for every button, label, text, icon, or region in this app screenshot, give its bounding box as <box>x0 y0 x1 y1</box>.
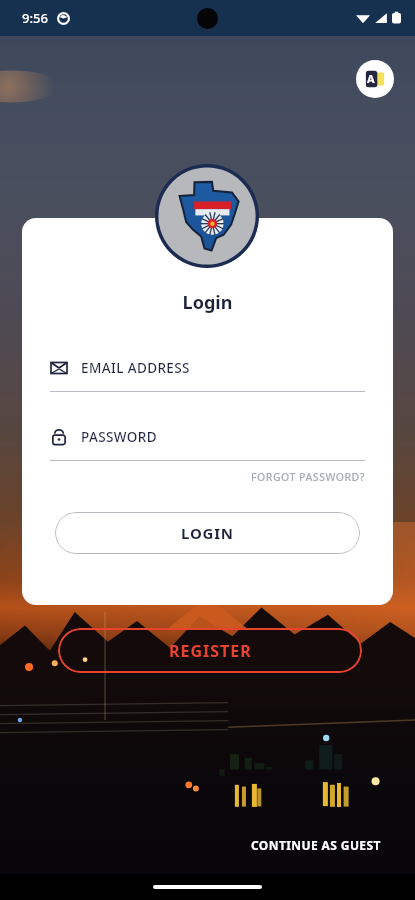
staticText: CONTINUE AS GUEST <box>251 837 381 853</box>
button[interactable]: LOGIN <box>55 512 360 554</box>
staticText: FORGOT PASSWORD? <box>251 470 365 484</box>
staticText: EMAIL ADDRESS <box>81 359 190 377</box>
button[interactable]: Accessibility shortcut <box>356 60 394 98</box>
button[interactable]: CONTINUE AS GUEST <box>247 833 385 857</box>
staticText: 9:56 <box>22 9 48 27</box>
staticText: PASSWORD <box>81 428 158 446</box>
button[interactable]: REGISTER <box>58 628 362 673</box>
button[interactable]: FORGOT PASSWORD? <box>251 470 365 484</box>
staticText: REGISTER <box>169 640 252 662</box>
button[interactable]: PASSWORD <box>50 428 365 461</box>
staticText: A <box>367 71 375 86</box>
staticText: Login <box>22 290 393 315</box>
button[interactable]: EMAIL ADDRESS <box>50 359 365 392</box>
staticText: LOGIN <box>181 523 234 543</box>
